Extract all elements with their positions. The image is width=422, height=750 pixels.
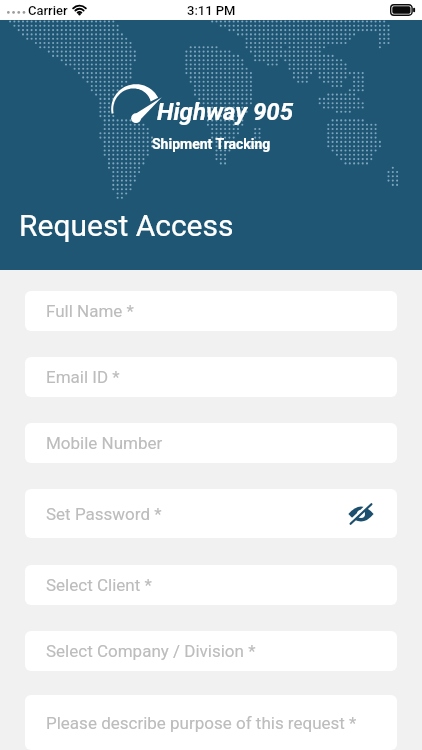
button[interactable]: Mobile Number <box>25 423 397 463</box>
staticText: Full Name * <box>46 301 134 321</box>
button[interactable]: Select Client * <box>25 565 397 605</box>
staticText: Set Password * <box>46 504 162 524</box>
button[interactable]: Full Name * <box>25 291 397 331</box>
staticText: Request Access <box>19 208 234 243</box>
staticText: Select Client * <box>46 575 152 595</box>
staticText: Highway 905 <box>157 98 294 126</box>
staticText: Please describe purpose of this request … <box>46 713 357 733</box>
staticText: 3:11 PM <box>187 3 236 18</box>
button[interactable]: Show password <box>346 499 376 529</box>
button[interactable]: Email ID * <box>25 357 397 397</box>
button[interactable]: Select Company / Division * <box>25 631 397 671</box>
staticText: Shipment Tracking <box>152 136 271 152</box>
button[interactable]: Please describe purpose of this request … <box>25 695 397 750</box>
staticText: Select Company / Division * <box>46 641 256 661</box>
staticText: Mobile Number <box>46 433 163 453</box>
button[interactable]: Set Password * <box>25 489 397 538</box>
staticText: Email ID * <box>46 367 120 387</box>
staticText: Carrier <box>28 3 68 18</box>
